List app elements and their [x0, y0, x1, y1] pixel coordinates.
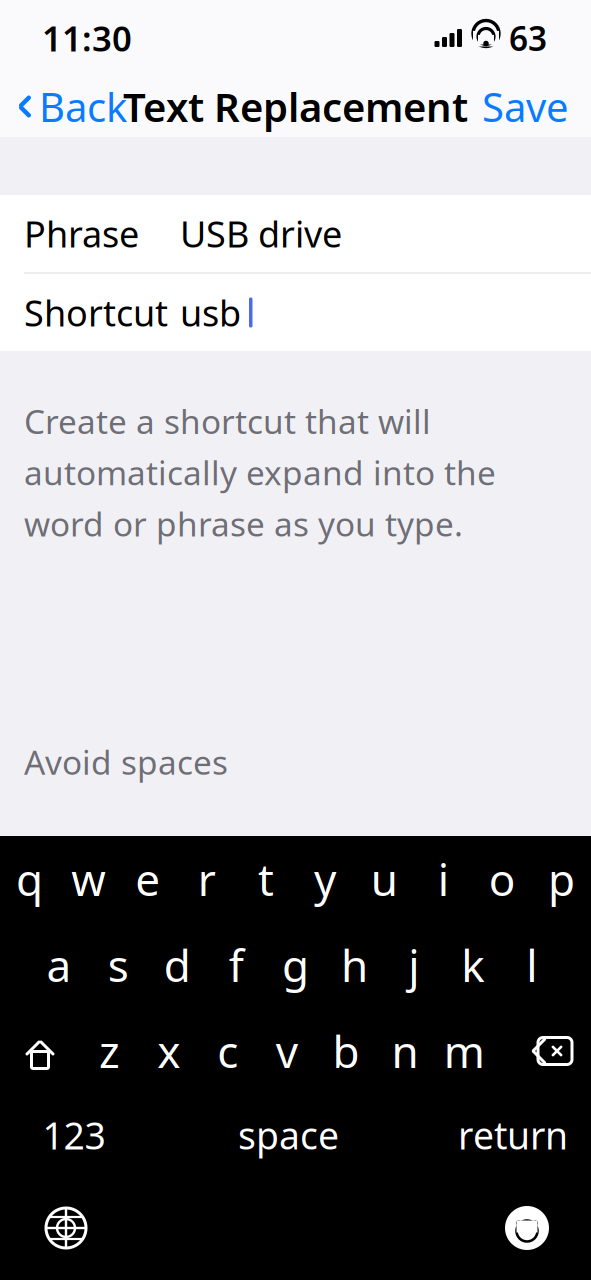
button[interactable]: s: [90, 921, 146, 1009]
staticText: q: [16, 850, 43, 908]
button[interactable]: b: [318, 1007, 374, 1095]
staticText: f: [229, 936, 244, 994]
button[interactable]: r: [179, 835, 235, 923]
button[interactable]: v: [259, 1007, 315, 1095]
staticText: t: [258, 850, 274, 908]
staticText: space: [238, 1110, 339, 1160]
button[interactable]: Phrase: [0, 195, 591, 272]
staticText: 11:30: [42, 15, 132, 61]
staticText: e: [135, 850, 160, 908]
button[interactable]: Back: [0, 70, 139, 143]
button[interactable]: Save: [468, 70, 591, 143]
button[interactable]: j: [386, 921, 442, 1009]
staticText: Create a shortcut that will automaticall…: [24, 399, 496, 546]
staticText: r: [198, 850, 216, 908]
staticText: g: [282, 936, 309, 994]
staticText: 63: [509, 16, 547, 60]
staticText: usb: [180, 289, 241, 336]
staticText: i: [438, 850, 449, 908]
button[interactable]: h: [327, 921, 383, 1009]
staticText: return: [458, 1110, 568, 1160]
staticText: h: [341, 936, 368, 994]
button[interactable]: 123: [14, 1095, 134, 1175]
button[interactable]: i: [415, 835, 471, 923]
staticText: Phrase: [24, 210, 139, 257]
button[interactable]: return: [443, 1095, 583, 1175]
staticText: v: [276, 1022, 298, 1080]
button[interactable]: Shortcut: [0, 274, 591, 351]
button[interactable]: space: [178, 1095, 398, 1175]
button[interactable]: t: [238, 835, 294, 923]
button[interactable]: f: [208, 921, 264, 1009]
staticText: 123: [42, 1110, 105, 1160]
staticText: w: [71, 850, 106, 908]
button[interactable]: o: [474, 835, 530, 923]
staticText: c: [217, 1022, 238, 1080]
button[interactable]: d: [149, 921, 205, 1009]
button[interactable]: g: [267, 921, 323, 1009]
button[interactable]: q: [2, 835, 58, 923]
staticText: b: [332, 1022, 359, 1080]
button[interactable]: z: [82, 1007, 138, 1095]
button[interactable]: x: [141, 1007, 197, 1095]
button[interactable]: a: [31, 921, 87, 1009]
staticText: d: [164, 936, 191, 994]
staticText: y: [314, 850, 336, 908]
staticText: u: [371, 850, 398, 908]
staticText: j: [408, 936, 419, 994]
button[interactable]: p: [533, 835, 589, 923]
staticText: a: [47, 936, 72, 994]
button[interactable]: m: [436, 1007, 492, 1095]
staticText: z: [99, 1022, 120, 1080]
staticText: Shortcut: [24, 289, 168, 336]
button[interactable]: w: [61, 835, 117, 923]
staticText: Avoid spaces: [24, 740, 228, 784]
button[interactable]: k: [445, 921, 501, 1009]
staticText: Text Replacement: [123, 80, 468, 133]
staticText: Save: [482, 80, 569, 133]
staticText: x: [157, 1022, 180, 1080]
button[interactable]: Next keyboard: [29, 1191, 103, 1265]
staticText: p: [548, 850, 575, 908]
button[interactable]: u: [356, 835, 412, 923]
staticText: USB drive: [180, 210, 342, 257]
staticText: m: [444, 1022, 485, 1080]
button[interactable]: l: [504, 921, 560, 1009]
button[interactable]: Shift: [9, 1007, 71, 1095]
staticText: Back: [39, 80, 127, 133]
button[interactable]: e: [120, 835, 176, 923]
staticText: o: [489, 850, 516, 908]
button[interactable]: Delete: [520, 1007, 582, 1095]
staticText: n: [392, 1022, 419, 1080]
button[interactable]: c: [200, 1007, 256, 1095]
staticText: s: [108, 936, 129, 994]
button[interactable]: Emoji: [490, 1191, 564, 1265]
button[interactable]: n: [377, 1007, 433, 1095]
staticText: l: [526, 936, 537, 994]
button[interactable]: y: [297, 835, 353, 923]
staticText: k: [461, 936, 484, 994]
